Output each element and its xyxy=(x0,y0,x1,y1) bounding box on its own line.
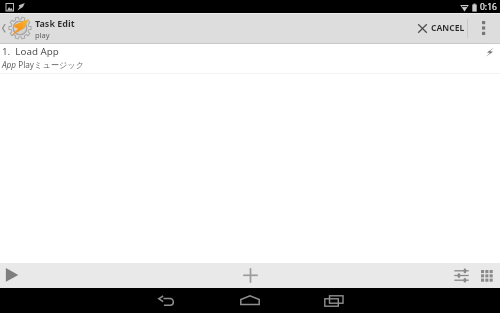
staticText: 0:16 xyxy=(480,1,497,13)
button[interactable]: Task Edit xyxy=(0,13,410,43)
button[interactable]: 1. Load App xyxy=(0,44,500,74)
button[interactable]: Settings xyxy=(449,263,474,288)
button[interactable]: Recent apps xyxy=(292,288,376,313)
staticText: Task Edit xyxy=(35,17,75,29)
staticText: play xyxy=(35,30,50,40)
staticText: App Playミュージック xyxy=(2,59,85,70)
staticText: CANCEL xyxy=(431,22,465,34)
staticText: 1. Load App xyxy=(2,45,59,58)
button[interactable]: More options xyxy=(468,13,500,43)
button[interactable]: Back xyxy=(124,288,208,313)
button[interactable]: CANCEL xyxy=(410,13,467,43)
button[interactable]: Home xyxy=(208,288,292,313)
button[interactable]: Run task xyxy=(0,263,24,288)
button[interactable]: Add action xyxy=(230,263,270,288)
button[interactable]: Grid view xyxy=(474,263,499,288)
